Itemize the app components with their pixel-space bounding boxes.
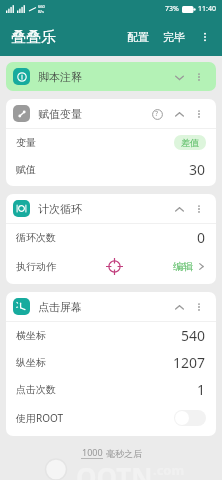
button[interactable]: 变量 bbox=[6, 129, 216, 156]
staticText: 循环次数 bbox=[16, 231, 56, 244]
staticText: 73% bbox=[165, 4, 179, 14]
button[interactable]: 脚本注释 bbox=[6, 62, 216, 91]
staticText: 点击屏幕 bbox=[38, 300, 82, 314]
button[interactable]: More bbox=[189, 297, 209, 317]
button[interactable]: More bbox=[189, 199, 209, 219]
button[interactable]: 计次循环 bbox=[6, 194, 216, 223]
button[interactable]: Expand bbox=[169, 67, 189, 87]
staticText: 变量 bbox=[16, 136, 36, 149]
button[interactable]: Collapse bbox=[169, 104, 189, 124]
staticText: 1 bbox=[197, 380, 206, 399]
staticText: 脚本注释 bbox=[38, 70, 82, 84]
button[interactable]: 循环次数 bbox=[6, 224, 216, 251]
button[interactable]: 差值 bbox=[174, 135, 206, 150]
staticText: 使用ROOT bbox=[16, 411, 64, 425]
button[interactable]: 横坐标 bbox=[6, 322, 216, 349]
staticText: 赋值变量 bbox=[38, 107, 82, 121]
staticText: 叠叠乐 bbox=[11, 28, 56, 47]
staticText: 0 bbox=[197, 228, 206, 247]
button[interactable]: 使用ROOT bbox=[6, 403, 216, 432]
staticText: 30 bbox=[189, 160, 206, 179]
button[interactable]: 执行动作 bbox=[6, 251, 216, 281]
staticText: 点击次数 bbox=[16, 383, 56, 396]
staticText: 赋值 bbox=[16, 163, 36, 176]
button[interactable]: 完毕 bbox=[156, 24, 192, 50]
staticText: 毫秒之后 bbox=[106, 448, 142, 459]
staticText: 1207 bbox=[173, 353, 206, 372]
staticText: 完毕 bbox=[163, 30, 185, 44]
staticText: 540 bbox=[181, 326, 206, 345]
staticText: 计次循环 bbox=[38, 202, 82, 216]
staticText: B/s bbox=[38, 9, 45, 14]
staticText: 11:40 bbox=[198, 4, 216, 14]
button[interactable]: 赋值 bbox=[6, 156, 216, 183]
button[interactable]: More bbox=[189, 104, 209, 124]
staticText: 配置 bbox=[127, 30, 149, 44]
button[interactable]: 点击次数 bbox=[6, 376, 216, 403]
button[interactable]: 点击屏幕 bbox=[6, 292, 216, 321]
button[interactable]: 配置 bbox=[120, 24, 156, 50]
button[interactable]: 赋值变量 bbox=[6, 99, 216, 128]
button[interactable]: Collapse bbox=[169, 199, 189, 219]
button[interactable]: Collapse bbox=[169, 297, 189, 317]
button[interactable]: 纵坐标 bbox=[6, 349, 216, 376]
button[interactable]: More bbox=[189, 67, 209, 87]
staticText: 执行动作 bbox=[16, 260, 56, 273]
staticText: QQTN bbox=[76, 459, 153, 480]
staticText: 660 bbox=[38, 4, 45, 9]
button[interactable]: More options bbox=[192, 24, 218, 50]
staticText: 横坐标 bbox=[16, 329, 46, 342]
staticText: ? bbox=[155, 109, 159, 119]
staticText: 纵坐标 bbox=[16, 356, 46, 369]
staticText: 编辑 bbox=[173, 260, 193, 273]
button[interactable]: Use ROOT toggle bbox=[174, 410, 206, 426]
button[interactable]: Help bbox=[147, 104, 167, 124]
staticText: 差值 bbox=[181, 137, 199, 148]
staticText: 1000 bbox=[82, 446, 103, 458]
